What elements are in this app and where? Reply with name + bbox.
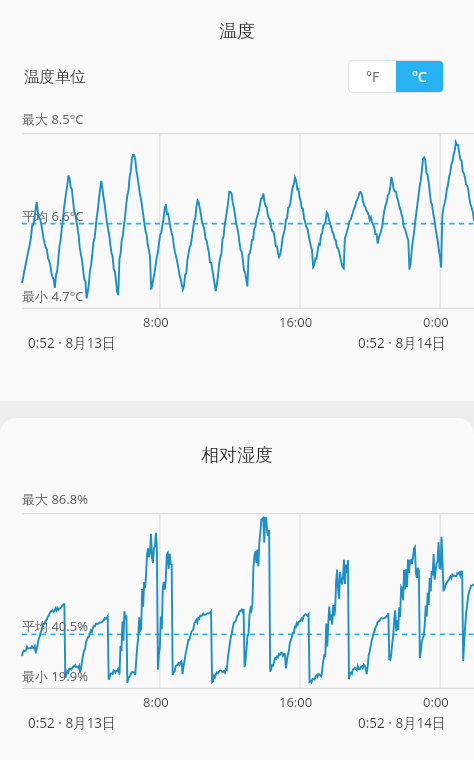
staticText: 0:00 [423, 313, 449, 331]
staticText: 最小 4.7°C [22, 287, 84, 305]
staticText: 8:00 [143, 693, 169, 711]
staticText: °F [366, 67, 380, 86]
staticText: 0:52 · 8月13日 [28, 334, 116, 352]
staticText: 0:52 · 8月14日 [358, 334, 446, 352]
staticText: 0:52 · 8月14日 [358, 714, 446, 732]
staticText: 温度单位 [24, 67, 86, 87]
staticText: 8:00 [143, 313, 169, 331]
staticText: 温度 [0, 20, 474, 43]
staticText: 0:52 · 8月13日 [28, 714, 116, 732]
staticText: 0:00 [423, 693, 449, 711]
staticText: 最大 86.8% [22, 490, 88, 508]
button[interactable]: Celsius [396, 61, 443, 92]
staticText: 最小 19.9% [22, 667, 88, 685]
staticText: 最大 8.5°C [22, 110, 84, 128]
staticText: °C [412, 67, 427, 86]
staticText: 相对湿度 [0, 444, 474, 467]
staticText: 平均 40.5% [22, 617, 88, 635]
staticText: 16:00 [279, 313, 313, 331]
staticText: 16:00 [279, 693, 313, 711]
button[interactable]: Fahrenheit [349, 61, 396, 92]
staticText: 平均 6.6°C [22, 207, 84, 225]
